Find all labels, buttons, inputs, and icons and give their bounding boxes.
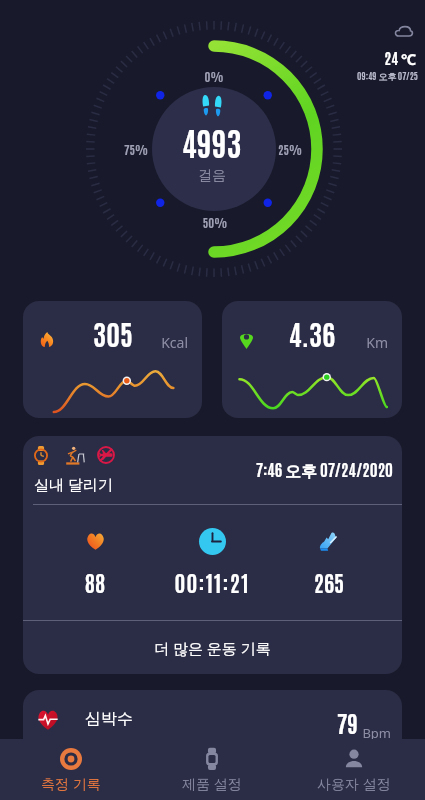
other: Treadmill (64, 446, 86, 465)
staticText: 제품 설정 (182, 774, 242, 793)
other: Watch (34, 446, 48, 465)
staticText: 24 ℃ (300, 48, 416, 70)
staticText: 실내 달리기 (34, 474, 113, 494)
button[interactable]: 제품 설정 (141, 739, 283, 800)
other: Weather (394, 25, 413, 37)
other: Distance (240, 331, 253, 349)
staticText: Kcal (23, 333, 188, 352)
staticText: 7:46 오후 07/24/2020 (23, 459, 393, 482)
other: Calories (40, 332, 54, 347)
staticText: 사용자 설정 (317, 774, 391, 793)
staticText: 심박수 (85, 709, 133, 729)
staticText: 측정 기록 (41, 774, 101, 793)
other: Steps (319, 531, 339, 551)
staticText: 75% (106, 141, 166, 157)
other: Airplane mode off (97, 446, 115, 464)
other: Duration (199, 528, 226, 555)
staticText: 4.36 (262, 315, 362, 351)
staticText: 0% (184, 68, 244, 84)
staticText: 88 (23, 568, 195, 596)
staticText: 09:49 오후 07/25 (280, 70, 418, 83)
staticText: 4993 (182, 121, 242, 162)
staticText: 걸음 (198, 167, 226, 185)
other: Heart rate (86, 533, 105, 550)
staticText: 305 (63, 315, 163, 351)
button[interactable]: Heart rate (23, 690, 402, 770)
staticText: Km (222, 333, 388, 352)
staticText: 25% (260, 141, 320, 157)
staticText: 더 많은 운동 기록 (154, 638, 271, 658)
staticText: 50% (185, 214, 245, 230)
button[interactable]: Calories (23, 301, 202, 418)
staticText: Bpm (23, 724, 391, 742)
button[interactable]: 측정 기록 (0, 739, 141, 800)
staticText: 79 (23, 707, 358, 737)
button[interactable]: 사용자 설정 (283, 739, 425, 800)
button[interactable]: Distance (222, 301, 402, 418)
staticText: 265 (229, 568, 402, 596)
staticText: 00:11:21 (112, 568, 312, 596)
other: Heart rate (37, 710, 59, 730)
button[interactable]: 더 많은 운동 기록 (23, 621, 402, 674)
